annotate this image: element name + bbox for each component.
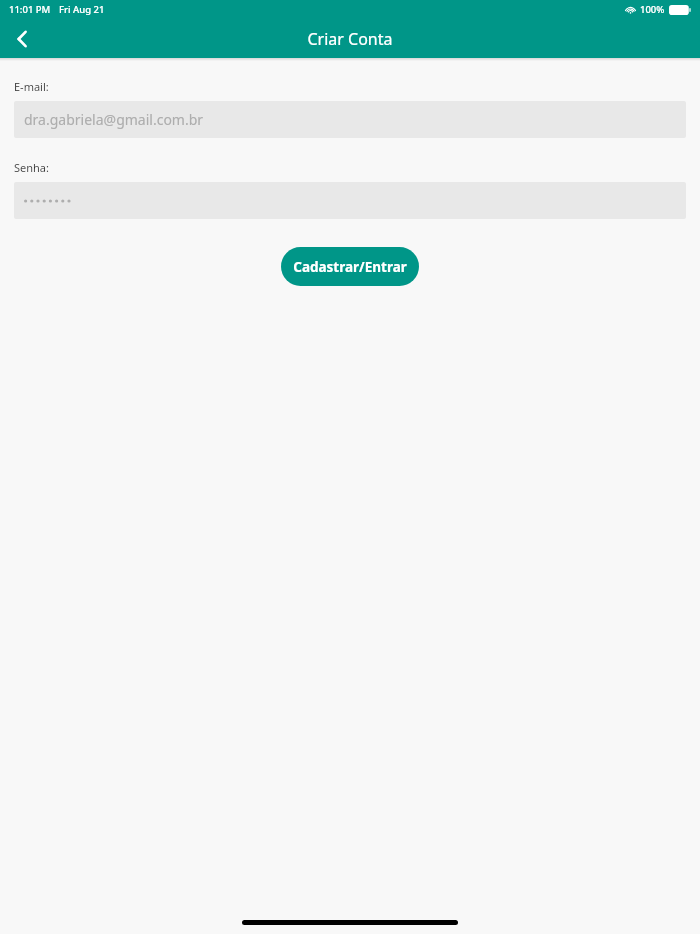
staticText: Cadastrar/Entrar (293, 258, 407, 276)
staticText: Criar Conta (307, 28, 393, 50)
button[interactable]: Back (0, 19, 44, 58)
staticText: 100% (640, 3, 665, 16)
staticText: Fri Aug 21 (59, 3, 105, 16)
staticText: dra.gabriela@gmail.com.br (24, 110, 204, 129)
button[interactable]: Cadastrar/Entrar (281, 247, 419, 286)
button[interactable]: dra.gabriela@gmail.com.br (14, 101, 686, 138)
staticText: E-mail: (14, 79, 49, 94)
staticText: 11:01 PM (9, 3, 51, 16)
staticText: Senha: (14, 160, 49, 175)
